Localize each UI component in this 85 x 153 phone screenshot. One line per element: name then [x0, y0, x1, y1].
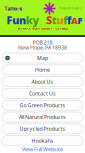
staticText: T — [5, 5, 8, 12]
staticText: Hookahs — [31, 137, 53, 144]
button[interactable]: Hookahs — [2, 136, 83, 146]
staticText: f — [63, 13, 67, 27]
staticText: POB 218 — [32, 39, 52, 46]
button[interactable]: View Full Website — [0, 146, 85, 153]
staticText: F — [7, 13, 13, 27]
staticText: New Hope, PA 18938 — [18, 44, 67, 51]
button[interactable]: Contact Us — [2, 88, 83, 98]
staticText: Map — [37, 54, 48, 62]
staticText: View Full Website — [22, 146, 63, 153]
staticText: o — [17, 5, 20, 12]
staticText: S — [46, 13, 52, 27]
button[interactable]: Home — [2, 65, 83, 75]
staticText: k — [26, 13, 33, 27]
staticText: Upcycled Products — [19, 125, 65, 132]
staticText: Go Green Products — [19, 102, 65, 109]
staticText: f — [67, 13, 71, 27]
staticText: Home — [35, 66, 50, 73]
staticText: handmade — [59, 5, 81, 11]
staticText: t — [10, 5, 12, 12]
staticText: t — [12, 5, 14, 12]
staticText: o — [14, 5, 17, 12]
staticText: Contact Us — [29, 90, 56, 97]
button[interactable]: Go Green Products — [2, 100, 83, 110]
staticText: About Us — [31, 78, 53, 85]
staticText: TATTOO'S · BODY JEWELRY · CRYSTALS — [17, 27, 67, 30]
staticText: y — [32, 13, 39, 27]
button[interactable]: Map — [2, 53, 83, 63]
staticText: A — [71, 14, 78, 26]
staticText: All Natural Products — [19, 113, 66, 121]
button[interactable]: Upcycled Products — [2, 124, 83, 134]
staticText: F — [77, 14, 82, 26]
staticText: n — [19, 13, 26, 27]
button[interactable]: About Us — [2, 77, 83, 87]
staticText: s — [19, 5, 22, 12]
staticText: u — [12, 13, 19, 27]
staticText: t — [52, 13, 57, 27]
button[interactable]: All Natural Products — [2, 112, 83, 122]
staticText: u — [56, 13, 63, 27]
staticText: a — [7, 5, 10, 12]
